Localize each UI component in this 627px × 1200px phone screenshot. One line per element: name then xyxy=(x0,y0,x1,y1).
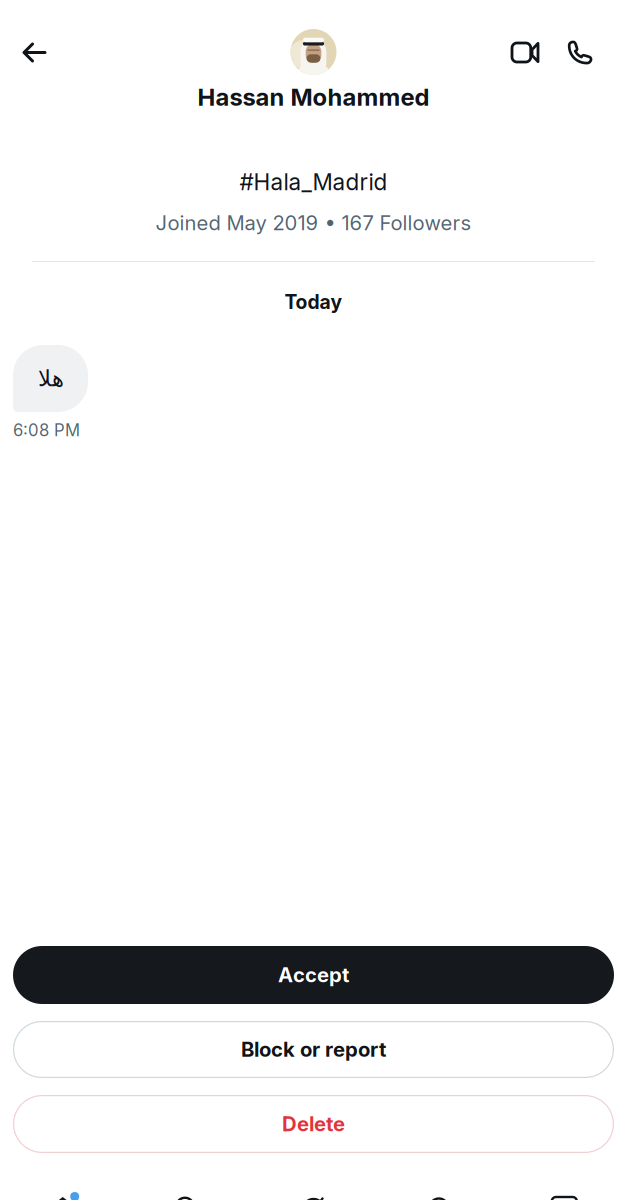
button[interactable]: Messages xyxy=(502,1186,627,1200)
staticText: Today xyxy=(284,290,342,314)
button[interactable]: Accept xyxy=(13,946,614,1004)
button[interactable]: Back xyxy=(0,27,58,78)
staticText: Joined May 2019 • 167 Followers xyxy=(155,211,471,235)
staticText: هلا xyxy=(37,365,63,392)
button[interactable]: Delete xyxy=(13,1095,614,1153)
staticText: Delete xyxy=(282,1112,345,1136)
staticText: #Hala_Madrid xyxy=(239,168,387,196)
button[interactable]: Block or report xyxy=(13,1021,614,1078)
button[interactable]: Spaces xyxy=(251,1186,376,1200)
staticText: Block or report xyxy=(241,1037,386,1062)
button[interactable]: Home xyxy=(0,1186,125,1200)
button[interactable]: Search xyxy=(125,1186,251,1200)
staticText: 6:08 PM xyxy=(13,420,80,440)
button[interactable]: Video call xyxy=(496,27,552,78)
button[interactable]: Voice call xyxy=(552,27,627,78)
staticText: Accept xyxy=(278,963,349,987)
button[interactable]: Notifications xyxy=(376,1186,502,1200)
staticText: Hassan Mohammed xyxy=(197,82,429,111)
